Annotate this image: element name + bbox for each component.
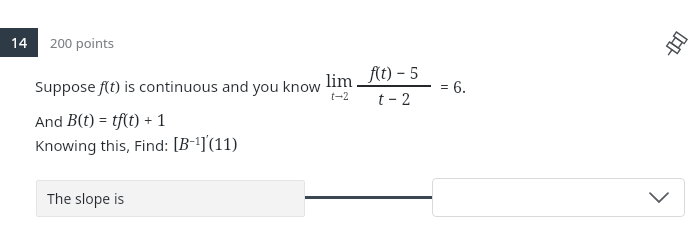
staticText: And [35,111,67,131]
staticText: 200 points [50,34,114,52]
staticText: Suppose f(t) is continuous and you know [35,76,321,96]
staticText: lim [326,69,353,92]
button[interactable]: The slope is [36,180,305,217]
staticText: B(t) = tf(t) + 1 [67,109,166,131]
button[interactable]: 14 [0,28,38,57]
staticText: t − 2 [378,88,411,110]
button[interactable]: Select answer [432,178,685,217]
staticText: 14 [11,33,28,52]
staticText: = 6. [440,76,467,98]
staticText: The slope is [47,189,125,208]
staticText: t→2 [331,89,349,103]
staticText: f(t) − 5 [370,62,419,84]
button[interactable]: Pin question [661,29,691,59]
staticText: [B−1]′(11) [173,131,238,155]
staticText: Knowing this, Find: [35,135,173,155]
